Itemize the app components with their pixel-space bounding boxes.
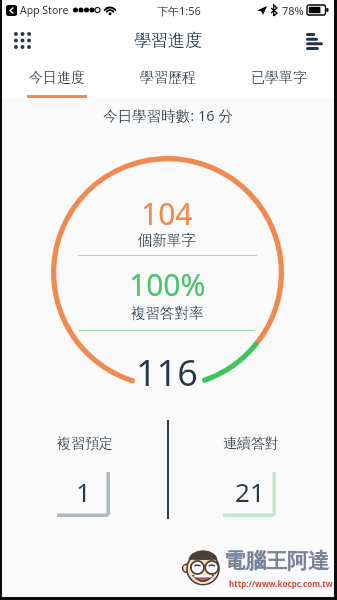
- button[interactable]: 連續答對: [168, 418, 334, 522]
- button[interactable]: 已學單字: [223, 58, 334, 98]
- button[interactable]: Menu: [294, 22, 334, 60]
- staticText: 複習答對率: [131, 304, 204, 322]
- staticText: 1: [76, 474, 91, 509]
- staticText: 個新單字: [138, 231, 196, 249]
- staticText: 100%: [129, 264, 206, 305]
- button[interactable]: 複習預定: [2, 418, 168, 522]
- staticText: 104: [141, 193, 193, 234]
- staticText: 下午1:56: [157, 3, 201, 18]
- staticText: 116: [136, 348, 198, 397]
- staticText: 21: [235, 474, 265, 509]
- staticText: 連續答對: [223, 435, 279, 453]
- staticText: 今日進度: [29, 69, 85, 87]
- staticText: 今日學習時數: 16 分: [2, 105, 334, 125]
- staticText: App Store: [20, 3, 69, 17]
- button[interactable]: 今日進度: [2, 58, 112, 98]
- staticText: 複習預定: [57, 435, 113, 453]
- staticText: http://www.kocpc.com.tw: [229, 578, 333, 589]
- staticText: 學習歷程: [140, 69, 196, 87]
- staticText: 78%: [282, 3, 304, 18]
- button[interactable]: 學習歷程: [112, 58, 223, 98]
- staticText: 已學單字: [251, 69, 307, 87]
- staticText: 電腦王阿達: [224, 548, 329, 574]
- staticText: 學習進度: [134, 30, 202, 51]
- button[interactable]: Apps: [2, 21, 42, 59]
